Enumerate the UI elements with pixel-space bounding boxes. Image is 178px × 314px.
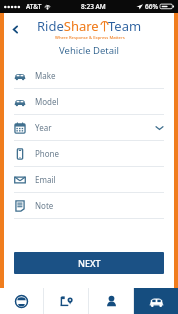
button[interactable]: Routes (44, 288, 88, 314)
staticText: Email (35, 174, 56, 185)
button[interactable]: Email (14, 167, 164, 193)
staticText: Make (35, 70, 56, 81)
button[interactable]: Phone (14, 141, 164, 167)
staticText: Phone (35, 148, 60, 159)
staticText: AT&T (26, 2, 42, 11)
staticText: Year (35, 122, 52, 133)
button[interactable]: Note (14, 193, 164, 219)
staticText: Note (35, 200, 54, 211)
button[interactable]: Back (4, 18, 26, 40)
button[interactable]: Passenger (89, 288, 133, 314)
button[interactable]: Make (14, 63, 164, 89)
button[interactable]: NEXT (14, 252, 164, 274)
staticText: Model (35, 96, 59, 107)
staticText: 66% (145, 2, 158, 11)
button[interactable]: Year (14, 115, 164, 141)
staticText: Team (108, 17, 142, 35)
staticText: NEXT (78, 257, 101, 269)
button[interactable]: Driver (0, 288, 43, 314)
staticText: Vehicle Detail (4, 44, 174, 57)
button[interactable]: Model (14, 89, 164, 115)
button[interactable]: Vehicle (134, 288, 178, 314)
staticText: RideShare (37, 17, 99, 35)
staticText: Where Response & Express Matters (55, 35, 125, 41)
staticText: 8:23 AM (81, 2, 106, 11)
